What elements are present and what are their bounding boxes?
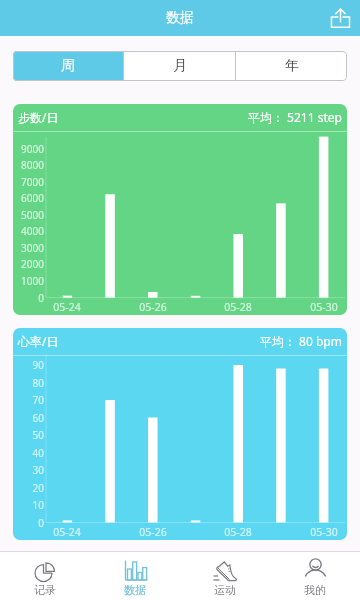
staticText: 90	[13, 358, 44, 372]
staticText: 3000	[13, 241, 44, 255]
staticText: 数据	[166, 9, 194, 27]
staticText: 05-28	[221, 300, 255, 314]
button[interactable]: 周	[13, 51, 123, 81]
staticText: 心率/日	[18, 333, 59, 349]
button[interactable]: 我的	[270, 552, 360, 600]
staticText: 50	[13, 428, 44, 442]
staticText: 40	[13, 446, 44, 460]
staticText: 30	[13, 463, 44, 477]
staticText: 记录	[34, 583, 56, 597]
staticText: 05-30	[307, 525, 341, 539]
staticText: 平均： 80 bpm	[260, 333, 342, 349]
button[interactable]: 数据	[90, 552, 180, 600]
staticText: 1000	[13, 274, 44, 288]
staticText: 60	[13, 411, 44, 425]
staticText: 10	[13, 498, 44, 512]
button[interactable]: 年	[236, 51, 347, 81]
staticText: 年	[285, 57, 299, 75]
staticText: 8000	[13, 158, 44, 172]
staticText: 月	[173, 57, 187, 75]
staticText: 4000	[13, 224, 44, 238]
staticText: 6000	[13, 191, 44, 205]
staticText: 05-24	[50, 300, 84, 314]
staticText: 20	[13, 481, 44, 495]
staticText: 05-26	[136, 525, 170, 539]
staticText: 运动	[214, 583, 236, 597]
staticText: 平均： 5211 step	[248, 109, 342, 125]
button[interactable]: 记录	[0, 552, 90, 600]
staticText: 0	[13, 291, 44, 305]
staticText: 我的	[304, 583, 326, 597]
staticText: 步数/日	[18, 109, 59, 125]
staticText: 05-24	[50, 525, 84, 539]
staticText: 0	[13, 516, 44, 530]
staticText: 数据	[124, 583, 146, 597]
staticText: 5000	[13, 208, 44, 222]
staticText: 05-26	[136, 300, 170, 314]
staticText: 80	[13, 376, 44, 390]
button[interactable]: Share	[320, 0, 360, 36]
button[interactable]: 月	[124, 51, 235, 81]
staticText: 7000	[13, 175, 44, 189]
button[interactable]: 运动	[180, 552, 270, 600]
staticText: 周	[61, 57, 75, 75]
staticText: 9000	[13, 142, 44, 156]
staticText: 05-28	[221, 525, 255, 539]
staticText: 2000	[13, 257, 44, 271]
staticText: 05-30	[307, 300, 341, 314]
staticText: 70	[13, 393, 44, 407]
